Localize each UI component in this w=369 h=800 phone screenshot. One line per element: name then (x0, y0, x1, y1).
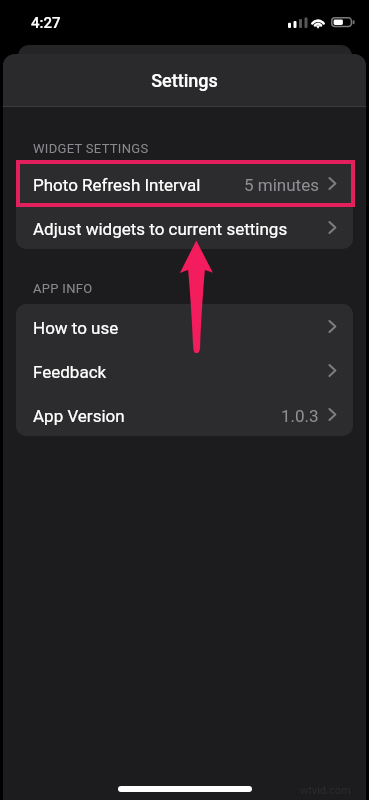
staticText: APP INFO (33, 281, 93, 296)
button[interactable]: Adjust widgets to current settings (16, 205, 353, 249)
staticText: 4:27 (31, 14, 61, 32)
staticText: wtvid.com (300, 784, 351, 797)
staticText: 1.0.3 (281, 406, 319, 426)
button[interactable]: App Version (16, 392, 353, 436)
button[interactable]: How to use (16, 304, 353, 348)
staticText: Feedback (33, 362, 107, 382)
staticText: WIDGET SETTINGS (33, 141, 149, 156)
staticText: Adjust widgets to current settings (33, 219, 288, 239)
button[interactable]: Feedback (16, 348, 353, 392)
staticText: 5 minutes (244, 175, 319, 195)
staticText: Settings (151, 70, 218, 91)
staticText: App Version (33, 406, 125, 426)
button[interactable]: Photo Refresh Interval (16, 161, 353, 205)
staticText: Photo Refresh Interval (33, 175, 201, 195)
staticText: How to use (33, 318, 119, 338)
